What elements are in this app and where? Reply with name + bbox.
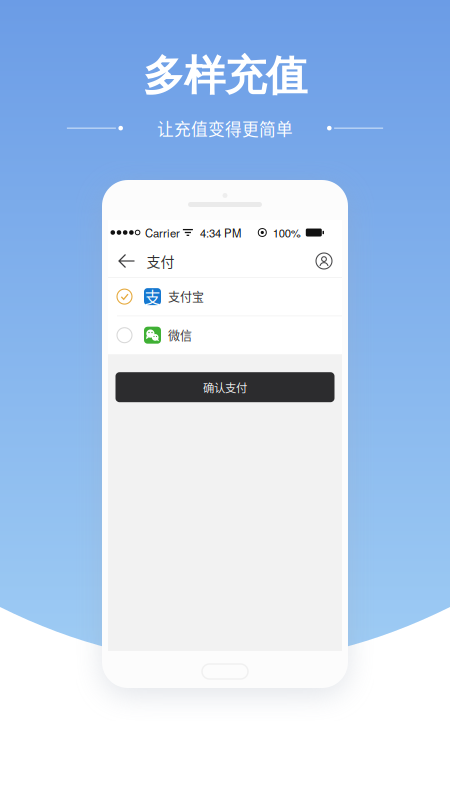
staticText: 4:34 PM (200, 224, 241, 241)
button[interactable]: 微信 (108, 316, 342, 354)
button[interactable]: 确认支付 (115, 372, 334, 402)
staticText: 100% (273, 224, 301, 241)
staticText: 支 (144, 285, 160, 308)
staticText: 让充值变得更简单 (157, 116, 293, 140)
button[interactable]: Back (113, 247, 140, 275)
staticText: 支付 (146, 251, 174, 271)
staticText: 微信 (168, 326, 192, 344)
staticText: 确认支付 (203, 379, 247, 395)
button[interactable]: 支 (108, 278, 342, 316)
staticText: 支付宝 (168, 288, 204, 305)
button[interactable]: Account (311, 248, 337, 274)
staticText: Carrier (145, 224, 180, 241)
staticText: 多样充值 (143, 50, 307, 102)
